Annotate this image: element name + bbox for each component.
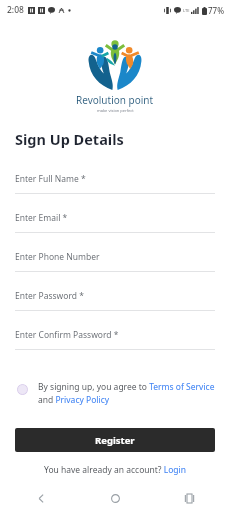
staticText: Revolution point (76, 93, 154, 107)
button[interactable]: Recent apps (176, 485, 202, 511)
staticText: Enter Confirm Password * (15, 329, 119, 341)
staticText: LTE (183, 8, 190, 13)
button[interactable]: Enter Full Name * (15, 173, 215, 212)
button[interactable]: Register (15, 428, 215, 452)
button[interactable]: Home (102, 485, 128, 511)
staticText: Enter Phone Number (15, 251, 100, 263)
staticText: 77% (208, 5, 224, 16)
staticText: make vision perfect (97, 108, 134, 113)
staticText: Enter Full Name * (15, 173, 86, 185)
staticText: 2:08 (7, 4, 24, 16)
button[interactable]: Enter Phone Number (15, 251, 215, 290)
staticText: Enter Email * (15, 212, 68, 224)
button[interactable]: Enter Password * (15, 290, 215, 329)
staticText: You have already an account? Login (44, 464, 187, 476)
button[interactable]: Enter Email * (15, 212, 215, 251)
staticText: Sign Up Details (15, 129, 124, 149)
staticText: Register (95, 434, 135, 447)
button[interactable]: Enter Confirm Password * (15, 329, 215, 368)
button[interactable]: Accept terms checkbox (15, 381, 215, 406)
button[interactable]: You have already an account? Login (15, 464, 215, 476)
other: Accept terms checkbox (17, 384, 28, 395)
button[interactable]: Back (28, 485, 54, 511)
staticText: Enter Password * (15, 290, 84, 302)
staticText: By signing up, you agree to Terms of Ser… (38, 381, 215, 406)
